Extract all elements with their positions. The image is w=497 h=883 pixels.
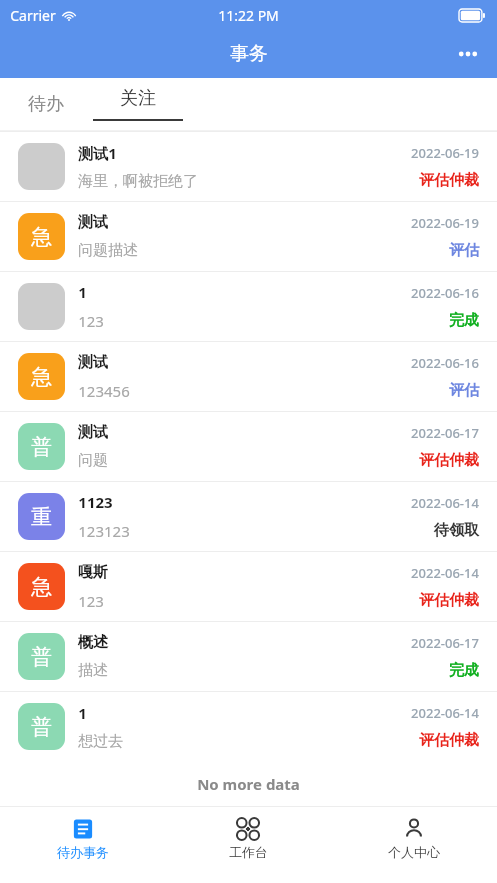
- staticText: 测试: [78, 423, 108, 442]
- button[interactable]: 重: [0, 481, 497, 551]
- button[interactable]: 个人中心: [331, 808, 497, 868]
- staticText: 急: [31, 224, 52, 250]
- staticText: 问题描述: [78, 241, 138, 260]
- staticText: 普: [31, 714, 52, 740]
- staticText: 2022-06-16: [411, 354, 479, 372]
- staticText: 2022-06-17: [411, 424, 479, 442]
- staticText: 1123: [78, 492, 113, 512]
- button[interactable]: 关注: [92, 78, 184, 130]
- button[interactable]: 普: [0, 691, 497, 761]
- staticText: 嘎斯: [78, 563, 108, 582]
- staticText: 个人中心: [388, 844, 440, 860]
- button[interactable]: 普: [0, 621, 497, 691]
- staticText: 2022-06-14: [411, 564, 479, 582]
- staticText: 2022-06-14: [411, 494, 479, 512]
- staticText: 待领取: [434, 521, 479, 540]
- staticText: No more data: [197, 774, 300, 794]
- staticText: 2022-06-17: [411, 634, 479, 652]
- button[interactable]: 工作台: [165, 808, 331, 868]
- staticText: 完成: [449, 661, 479, 680]
- button[interactable]: More options: [439, 39, 497, 69]
- button[interactable]: 测试1: [0, 131, 497, 201]
- staticText: 工作台: [229, 844, 268, 860]
- staticText: 测试: [78, 213, 108, 232]
- staticText: 评估仲裁: [419, 171, 479, 190]
- staticText: 123: [78, 311, 104, 331]
- button[interactable]: 待办: [0, 78, 92, 130]
- staticText: 普: [31, 644, 52, 670]
- staticText: 123123: [78, 521, 130, 541]
- staticText: 2022-06-16: [411, 284, 479, 302]
- staticText: 急: [31, 364, 52, 390]
- staticText: 完成: [449, 311, 479, 330]
- staticText: 123456: [78, 381, 130, 401]
- staticText: 问题: [78, 451, 108, 470]
- button[interactable]: 1: [0, 271, 497, 341]
- button[interactable]: 急: [0, 201, 497, 271]
- button[interactable]: 待办事务: [0, 808, 165, 868]
- staticText: Carrier: [10, 6, 56, 25]
- staticText: 概述: [78, 633, 108, 652]
- staticText: 描述: [78, 661, 108, 680]
- button[interactable]: 急: [0, 341, 497, 411]
- staticText: 评估仲裁: [419, 591, 479, 610]
- staticText: 2022-06-14: [411, 704, 479, 722]
- button[interactable]: 普: [0, 411, 497, 481]
- staticText: 测试1: [78, 143, 117, 163]
- staticText: 测试: [78, 353, 108, 372]
- staticText: 想过去: [78, 732, 123, 751]
- staticText: 待办: [28, 93, 64, 116]
- staticText: 重: [31, 504, 52, 530]
- staticText: 123: [78, 591, 104, 611]
- staticText: 关注: [120, 87, 156, 110]
- staticText: 待办事务: [57, 844, 109, 860]
- staticText: 评估: [449, 241, 479, 260]
- staticText: 评估: [449, 381, 479, 400]
- staticText: 1: [78, 282, 87, 302]
- staticText: 急: [31, 574, 52, 600]
- staticText: 评估仲裁: [419, 731, 479, 750]
- staticText: 1: [78, 703, 87, 723]
- staticText: 2022-06-19: [411, 214, 479, 232]
- button[interactable]: 急: [0, 551, 497, 621]
- staticText: 海里，啊被拒绝了: [78, 172, 198, 191]
- staticText: 11:22 PM: [218, 6, 279, 25]
- staticText: 评估仲裁: [419, 451, 479, 470]
- staticText: 事务: [230, 42, 268, 66]
- staticText: 普: [31, 434, 52, 460]
- staticText: 2022-06-19: [411, 144, 479, 162]
